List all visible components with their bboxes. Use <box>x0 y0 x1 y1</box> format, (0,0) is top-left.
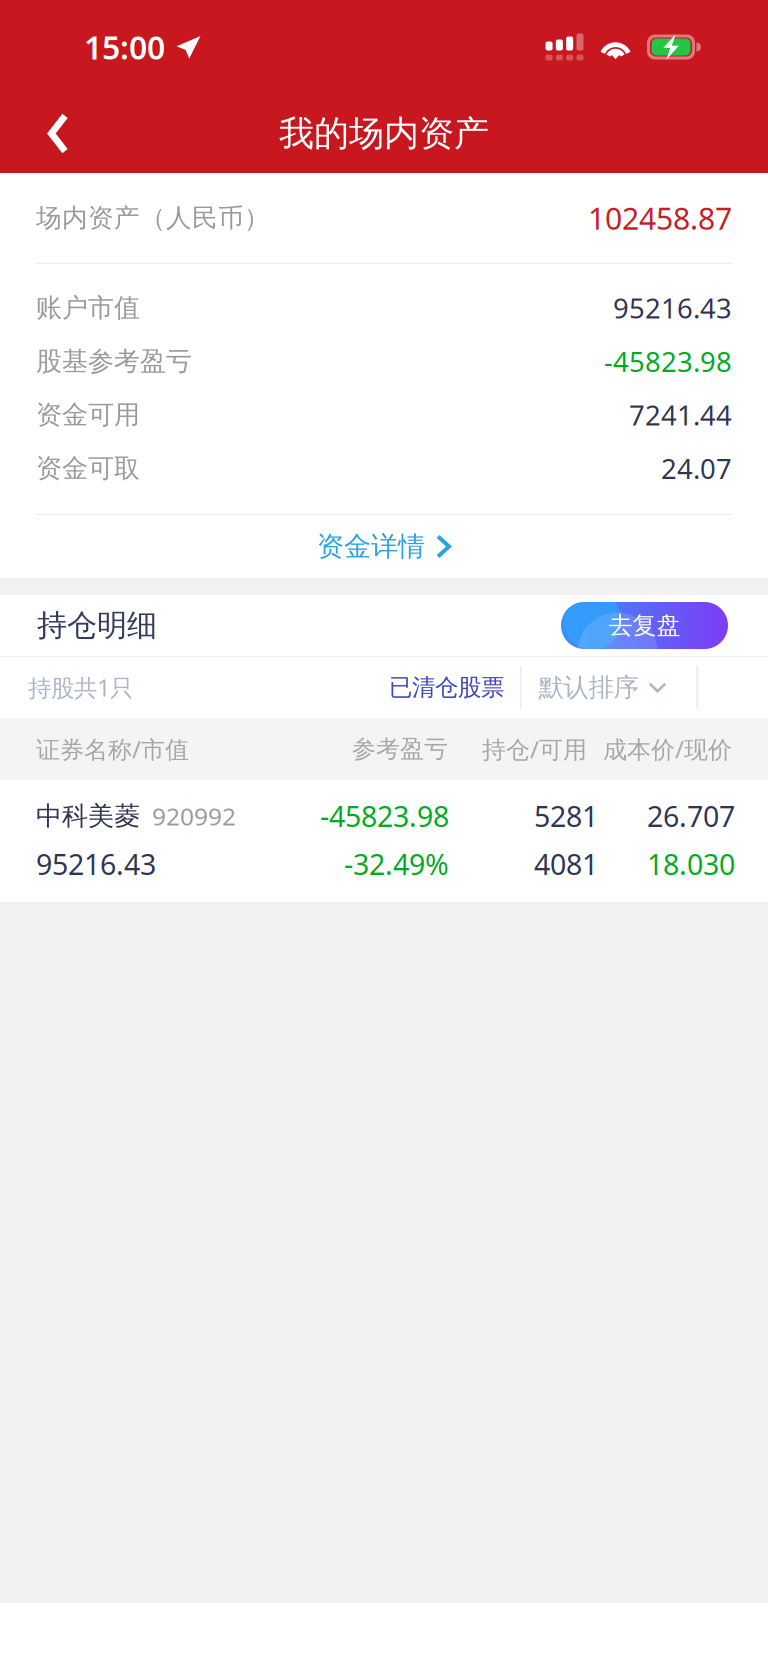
staticText: -45823.98 <box>604 342 732 380</box>
staticText: 7241.44 <box>629 396 732 433</box>
staticText: 持股共1只 <box>28 671 133 703</box>
button[interactable]: 资金详情 <box>36 515 732 578</box>
staticText: 资金详情 <box>317 529 425 564</box>
button[interactable]: 去复盘 <box>561 602 728 649</box>
staticText: 95216.43 <box>613 289 732 326</box>
staticText: 5281 <box>534 797 598 835</box>
staticText: 股基参考盈亏 <box>36 345 192 378</box>
staticText: 中科美菱 <box>36 800 140 832</box>
staticText: 18.030 <box>647 845 735 883</box>
staticText: 920992 <box>140 799 236 833</box>
staticText: 账户市值 <box>36 291 140 324</box>
staticText: -32.49% <box>344 845 449 883</box>
staticText: 持仓/可用 <box>482 733 587 765</box>
staticText: 证券名称/市值 <box>36 733 189 765</box>
staticText: 15:00 <box>84 25 165 69</box>
staticText: 默认排序 <box>538 671 638 704</box>
staticText: 4081 <box>534 845 598 883</box>
button[interactable]: 中科美菱 <box>0 780 768 902</box>
staticText: 我的场内资产 <box>279 111 489 156</box>
staticText: -45823.98 <box>320 797 449 835</box>
button[interactable]: Back <box>0 94 95 173</box>
staticText: 95216.43 <box>36 845 156 883</box>
staticText: 102458.87 <box>588 197 732 238</box>
staticText: 26.707 <box>647 797 735 835</box>
staticText: 持仓明细 <box>37 606 157 644</box>
button[interactable]: 已清仓股票 <box>374 657 504 718</box>
staticText: 资金可取 <box>36 452 140 485</box>
staticText: 24.07 <box>661 449 732 487</box>
staticText: 已清仓股票 <box>389 673 504 702</box>
button[interactable]: 默认排序 <box>521 657 666 718</box>
staticText: 去复盘 <box>608 610 680 641</box>
staticText: 场内资产（人民币） <box>36 202 270 234</box>
staticText: 资金可用 <box>36 398 140 431</box>
staticText: 参考盈亏 <box>352 734 448 764</box>
staticText: 成本价/现价 <box>603 733 732 765</box>
